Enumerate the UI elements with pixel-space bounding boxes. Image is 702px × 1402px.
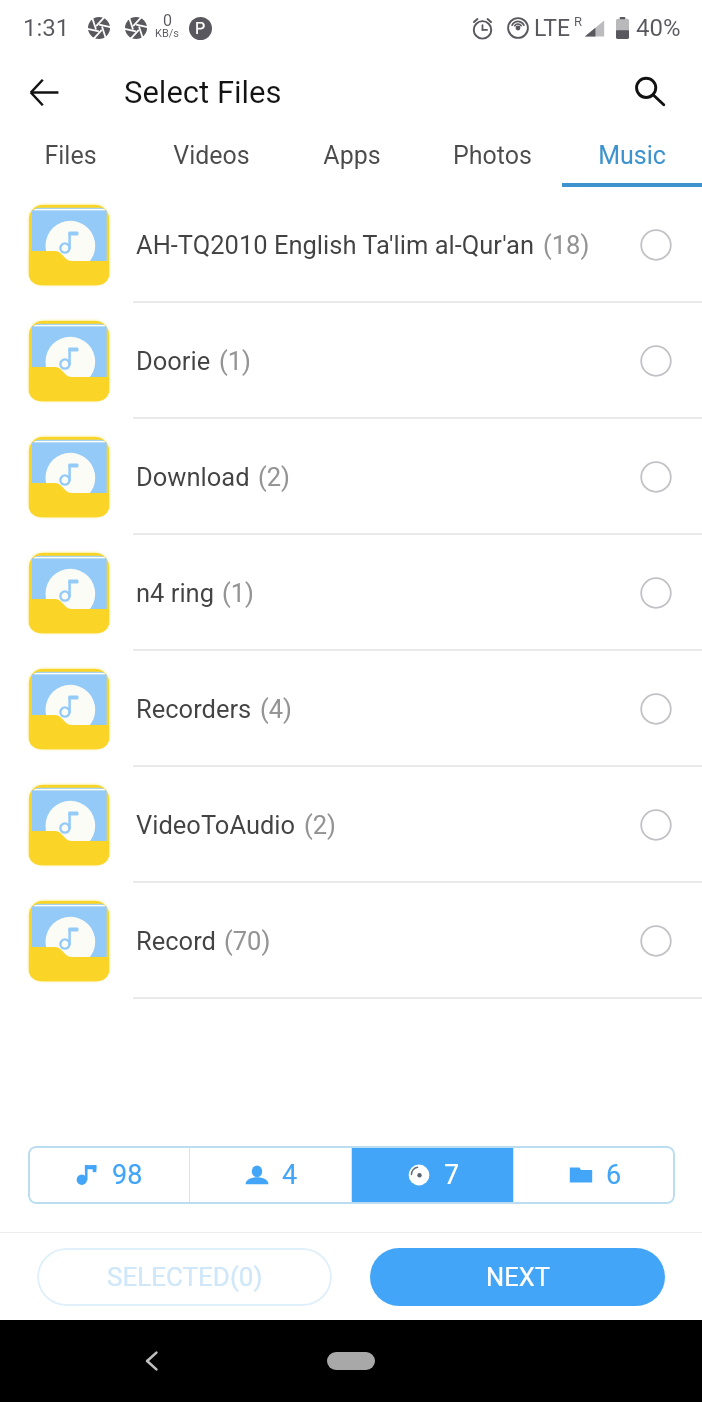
button[interactable]: NEXT [370, 1248, 665, 1306]
button[interactable]: 7 [352, 1146, 513, 1204]
staticText: 0 [163, 11, 172, 30]
staticText: (1) [219, 346, 251, 376]
staticText: Videos [173, 141, 250, 170]
button[interactable]: n4 ring [0, 535, 702, 651]
staticText: Photos [453, 141, 532, 170]
staticText: Download [136, 462, 250, 492]
staticText: n4 ring [136, 578, 214, 608]
staticText: VideoToAudio [136, 810, 296, 840]
button[interactable]: Recorders [0, 651, 702, 767]
staticText: NEXT [486, 1262, 550, 1292]
button[interactable]: AH-TQ2010 English Ta'lim al-Qur'an [0, 187, 702, 303]
button[interactable]: Home [327, 1352, 375, 1370]
button[interactable]: Record [0, 883, 702, 999]
staticText: (1) [222, 578, 254, 608]
staticText: Files [44, 141, 97, 170]
staticText: 98 [112, 1159, 143, 1191]
staticText: Doorie [136, 346, 211, 376]
staticText: SELECTED(0) [107, 1262, 263, 1292]
staticText: (70) [224, 926, 271, 956]
staticText: KB/s [155, 27, 179, 40]
staticText: 40% [636, 14, 681, 42]
button[interactable]: Back [126, 1335, 178, 1387]
button[interactable]: 98 [28, 1146, 189, 1204]
staticText: Record [136, 926, 216, 956]
staticText: (2) [258, 462, 290, 492]
staticText: (2) [304, 810, 336, 840]
staticText: Apps [323, 141, 381, 170]
button[interactable]: Photos [422, 128, 562, 187]
button[interactable]: SELECTED(0) [37, 1248, 332, 1306]
button[interactable]: Music [562, 128, 702, 187]
staticText: Select Files [124, 74, 282, 110]
staticText: Music [598, 141, 666, 170]
button[interactable]: Apps [282, 128, 422, 187]
button[interactable]: 4 [190, 1146, 351, 1204]
button[interactable]: Download [0, 419, 702, 535]
staticText: (4) [260, 694, 292, 724]
staticText: AH-TQ2010 English Ta'lim al-Qur'an [136, 230, 535, 260]
button[interactable]: Videos [141, 128, 282, 187]
staticText: P [195, 19, 206, 38]
staticText: 4 [282, 1159, 298, 1191]
staticText: 6 [606, 1159, 622, 1191]
button[interactable]: 6 [514, 1146, 675, 1204]
button[interactable]: Back [14, 62, 74, 122]
button[interactable]: Search [620, 62, 680, 122]
staticText: Recorders [136, 694, 252, 724]
staticText: R [574, 14, 583, 29]
button[interactable]: Files [0, 128, 141, 187]
staticText: LTE [534, 15, 571, 42]
button[interactable]: VideoToAudio [0, 767, 702, 883]
staticText: 7 [444, 1159, 460, 1191]
button[interactable]: Doorie [0, 303, 702, 419]
staticText: 1:31 [23, 14, 70, 42]
staticText: (18) [543, 230, 590, 260]
